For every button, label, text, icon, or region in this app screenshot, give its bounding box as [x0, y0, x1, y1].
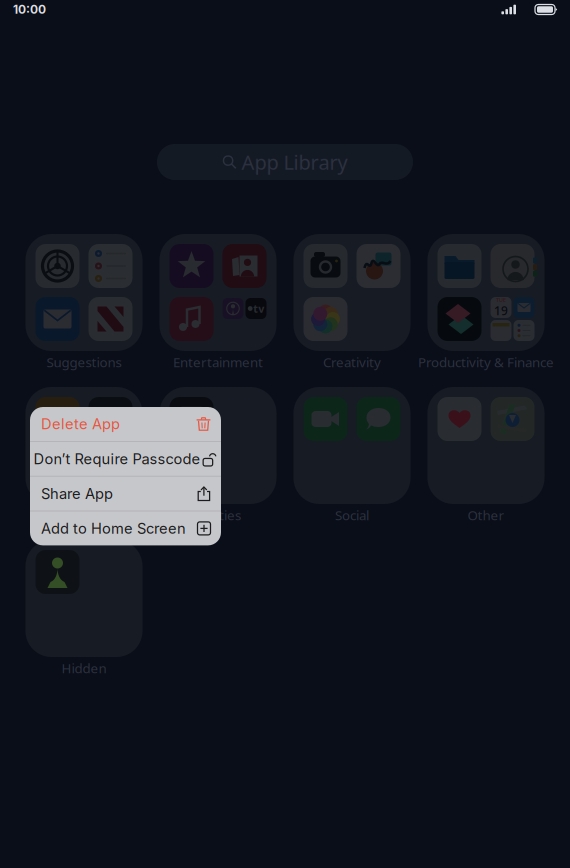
button[interactable]: Social [293, 387, 410, 526]
staticText: Productivity & Finance [418, 353, 554, 371]
button[interactable]: Creativity [293, 234, 410, 373]
staticText: Travel [65, 506, 102, 524]
button[interactable]: TUE [427, 234, 544, 373]
staticText: 10:00 [13, 2, 46, 17]
staticText: App Library [241, 149, 347, 175]
button[interactable]: Don’t Require Passcode [30, 442, 221, 476]
staticText: 19 [494, 303, 508, 318]
staticText: Creativity [323, 353, 381, 371]
button[interactable]: Delete App [30, 407, 221, 441]
button[interactable]: Share App [30, 477, 221, 511]
staticText: Hidden [61, 659, 106, 677]
staticText: Other [467, 506, 504, 524]
staticText: Social [335, 506, 369, 524]
button[interactable]: Suggestions [25, 234, 142, 373]
staticText: Share App [41, 485, 113, 502]
staticText: Suggestions [46, 353, 121, 371]
staticText: Add to Home Screen [41, 519, 186, 537]
staticText: tv [253, 301, 264, 316]
staticText: Utilities [195, 506, 241, 524]
button[interactable]: Travel [25, 387, 142, 526]
staticText: TUE [496, 296, 506, 304]
button[interactable]: Other [427, 387, 544, 526]
staticText: Entertainment [173, 353, 263, 371]
button[interactable]: Add to Home Screen [30, 511, 221, 545]
button[interactable]: Search App Library [157, 144, 413, 180]
staticText: Delete App [41, 415, 120, 433]
button[interactable]: Hidden [25, 540, 142, 679]
staticText: Don’t Require Passcode [33, 450, 200, 468]
button[interactable]: Utilities [159, 387, 276, 526]
button[interactable]: tv [159, 234, 276, 373]
